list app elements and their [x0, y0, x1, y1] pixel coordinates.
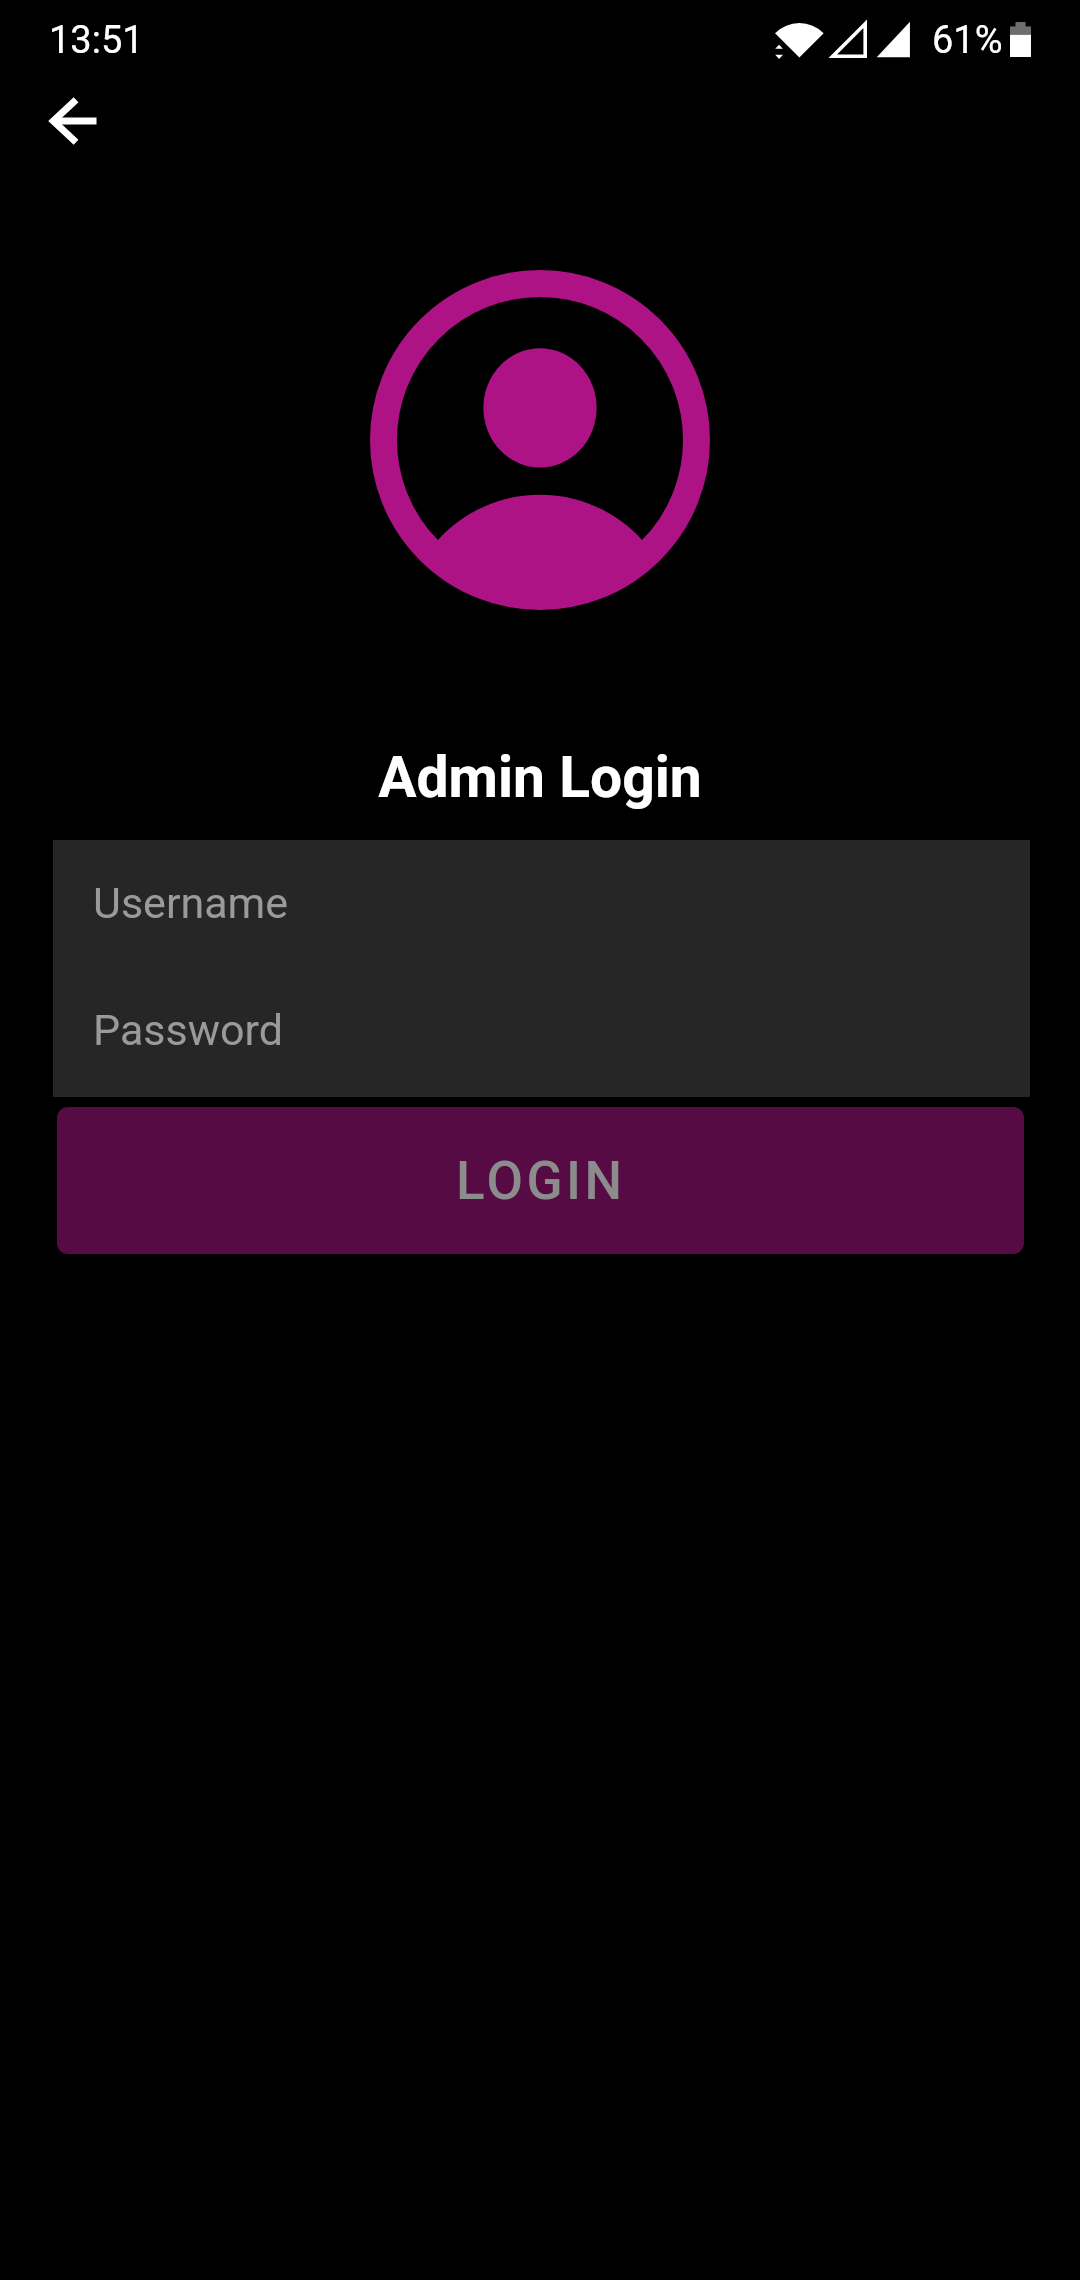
staticText: LOGIN [456, 1150, 626, 1212]
staticText: Admin Login [378, 744, 702, 811]
button[interactable]: Username [53, 840, 1030, 965]
staticText: Username [93, 878, 289, 928]
staticText: Password [93, 1005, 283, 1055]
button[interactable]: Password [53, 965, 1030, 1094]
staticText: 61% [932, 18, 1003, 63]
button[interactable]: Back [23, 71, 123, 171]
staticText: 13:51 [49, 18, 144, 63]
button[interactable]: LOGIN [57, 1107, 1024, 1254]
